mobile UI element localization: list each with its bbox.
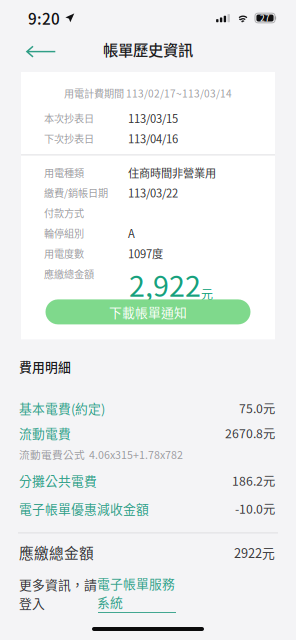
button[interactable]: 返回 [18, 37, 64, 66]
staticText: 帳單歷史資訊 [103, 38, 193, 60]
staticText: 基本電費(約定) [19, 399, 105, 417]
staticText: 9:20 [28, 7, 60, 29]
staticText: 用電種類 [44, 165, 84, 180]
staticText: 113/03/22 [128, 185, 178, 201]
staticText: 電子帳單優惠減收金額 [19, 499, 149, 518]
staticText: 27 [260, 12, 270, 24]
staticText: 1097度 [128, 245, 163, 261]
staticText: 186.2元 [232, 471, 275, 489]
staticText: 用電度數 [44, 246, 84, 261]
staticText: 75.0元 [239, 399, 275, 417]
staticText: 繳費/銷帳日期 [44, 185, 108, 200]
staticText: 元 [201, 285, 213, 302]
staticText: 2670.8元 [225, 424, 275, 442]
staticText: 電子帳單服務系統 [97, 574, 175, 611]
staticText: 應繳總金額 [19, 542, 94, 563]
staticText: 流動電費 [19, 424, 71, 442]
staticText: 住商時間非營業用 [128, 164, 216, 181]
staticText: 應繳總金額 [44, 266, 94, 281]
staticText: 費用明細 [19, 357, 71, 376]
staticText: 下次抄表日 [44, 131, 94, 146]
staticText: 分攤公共電費 [19, 471, 97, 490]
staticText: 2,922 [129, 263, 201, 305]
staticText: 113/03/15 [128, 110, 178, 126]
staticText: 付款方式 [44, 206, 84, 220]
staticText: 更多資訊，請登入 [19, 575, 97, 612]
staticText: 輪停組別 [44, 226, 84, 240]
staticText: A [128, 225, 135, 241]
staticText: 本次抄表日 [44, 111, 94, 125]
staticText: 下載帳單通知 [109, 303, 187, 321]
staticText: 2922元 [234, 543, 275, 562]
staticText: 用電計費期間 113/02/17~113/03/14 [64, 86, 232, 100]
button[interactable]: 下載帳單通知 [45, 299, 250, 324]
staticText: 113/04/16 [128, 130, 178, 146]
staticText: 流動電費公式 4.06x315+1.78x782 [19, 447, 183, 462]
button[interactable]: 電子帳單服務系統 [97, 574, 177, 613]
staticText: -10.0元 [235, 499, 275, 517]
